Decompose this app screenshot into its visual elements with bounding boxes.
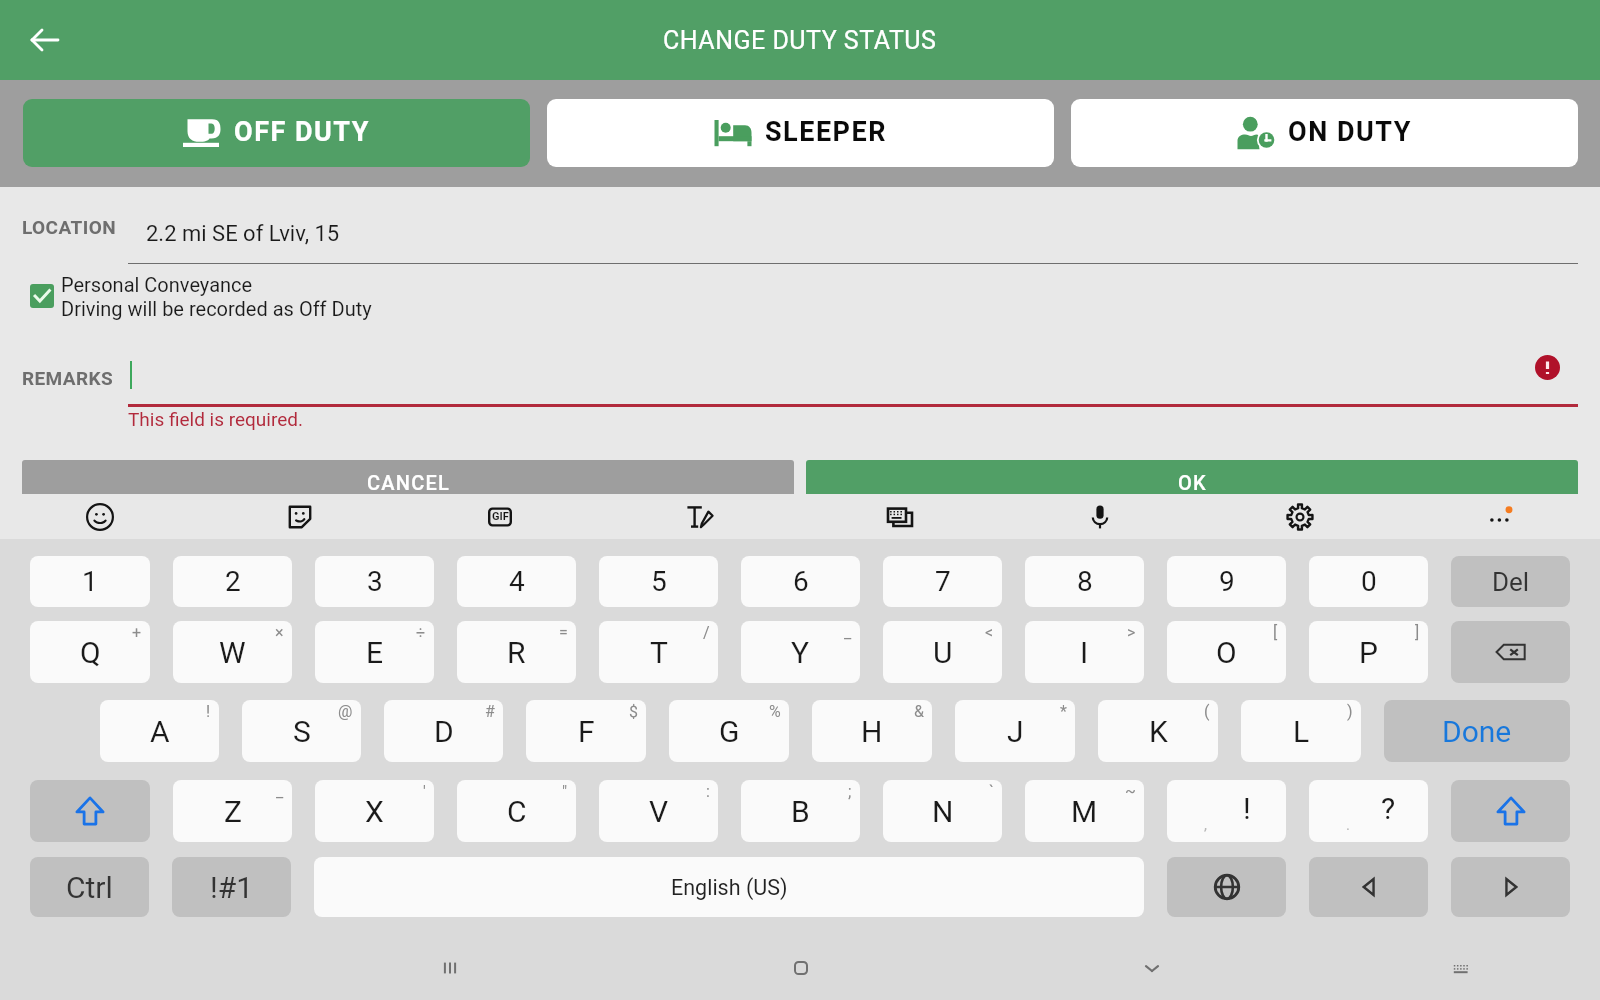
button[interactable]: 1 bbox=[30, 556, 150, 607]
staticText: U bbox=[933, 635, 953, 670]
staticText: GIF bbox=[492, 510, 509, 523]
button[interactable]: Recent apps bbox=[427, 945, 473, 991]
staticText: B bbox=[791, 794, 810, 829]
button[interactable]: G bbox=[669, 700, 789, 762]
staticText: OFF DUTY bbox=[234, 116, 370, 148]
button[interactable]: 7 bbox=[883, 556, 1002, 607]
button[interactable]: J bbox=[955, 700, 1075, 762]
staticText: 3 bbox=[367, 565, 383, 598]
other: Personal Conveyance checked bbox=[30, 284, 54, 308]
button[interactable]: N bbox=[883, 780, 1002, 842]
staticText: P bbox=[1359, 635, 1378, 670]
button[interactable]: backspace bbox=[1451, 621, 1570, 683]
button[interactable]: shift bbox=[1451, 780, 1570, 842]
staticText: ÷ bbox=[416, 623, 426, 642]
button[interactable]: U bbox=[883, 621, 1002, 683]
button[interactable]: Q bbox=[30, 621, 150, 683]
staticText: !#1 bbox=[210, 870, 254, 905]
button[interactable]: OFF DUTY bbox=[23, 99, 530, 167]
button[interactable]: English (US) bbox=[314, 857, 1144, 917]
button[interactable]: E bbox=[315, 621, 434, 683]
staticText: 8 bbox=[1077, 565, 1093, 598]
button[interactable]: 8 bbox=[1025, 556, 1144, 607]
button[interactable]: 0 bbox=[1309, 556, 1428, 607]
staticText: ON DUTY bbox=[1288, 116, 1412, 148]
staticText: J bbox=[1007, 714, 1024, 749]
staticText: _ bbox=[276, 782, 284, 801]
button[interactable]: GIF bbox=[400, 494, 600, 539]
button[interactable]: Ctrl bbox=[30, 857, 149, 917]
staticText: Ctrl bbox=[66, 870, 113, 905]
button[interactable]: H bbox=[812, 700, 932, 762]
button[interactable]: T bbox=[599, 621, 718, 683]
button[interactable]: Switch keyboard bbox=[1438, 945, 1484, 991]
button[interactable]: V bbox=[599, 780, 718, 842]
button[interactable]: More options bbox=[1400, 494, 1600, 539]
staticText: 2.2 mi SE of Lviv, 15 bbox=[146, 221, 340, 247]
button[interactable]: Hide keyboard bbox=[1129, 945, 1175, 991]
button[interactable]: X bbox=[315, 780, 434, 842]
button[interactable]: CANCEL bbox=[22, 460, 794, 504]
staticText: ; bbox=[848, 782, 852, 801]
button[interactable]: Emoji bbox=[0, 494, 200, 539]
staticText: ] bbox=[1415, 623, 1420, 642]
button[interactable]: R bbox=[457, 621, 576, 683]
button[interactable]: ! bbox=[1167, 780, 1286, 842]
button[interactable]: 4 bbox=[457, 556, 576, 607]
button[interactable]: globe bbox=[1167, 857, 1286, 917]
button[interactable]: F bbox=[526, 700, 646, 762]
staticText: Y bbox=[791, 635, 810, 670]
button[interactable]: C bbox=[457, 780, 576, 842]
button[interactable]: M bbox=[1025, 780, 1144, 842]
staticText: E bbox=[366, 635, 384, 670]
button[interactable]: Settings bbox=[1200, 494, 1400, 539]
button[interactable]: I bbox=[1025, 621, 1144, 683]
button[interactable]: S bbox=[242, 700, 361, 762]
button[interactable]: B bbox=[741, 780, 860, 842]
button[interactable]: ? bbox=[1309, 780, 1428, 842]
button[interactable]: Back bbox=[21, 16, 69, 64]
button[interactable]: Home bbox=[778, 945, 824, 991]
button[interactable]: D bbox=[384, 700, 503, 762]
staticText: C bbox=[507, 794, 527, 829]
button[interactable]: A bbox=[100, 700, 219, 762]
button[interactable]: 6 bbox=[741, 556, 860, 607]
button[interactable]: ON DUTY bbox=[1071, 99, 1578, 167]
button[interactable]: right bbox=[1451, 857, 1570, 917]
button[interactable]: O bbox=[1167, 621, 1286, 683]
staticText: / bbox=[703, 623, 710, 642]
staticText: 0 bbox=[1361, 565, 1377, 598]
button[interactable]: L bbox=[1241, 700, 1361, 762]
staticText: @ bbox=[338, 702, 353, 721]
button[interactable]: Z bbox=[173, 780, 292, 842]
button[interactable]: Handwriting bbox=[600, 494, 800, 539]
button[interactable]: 5 bbox=[599, 556, 718, 607]
button[interactable]: shift bbox=[30, 780, 150, 842]
staticText: " bbox=[562, 782, 568, 801]
button[interactable]: OK bbox=[806, 460, 1578, 504]
staticText: S bbox=[293, 714, 311, 749]
button[interactable]: Stickers bbox=[200, 494, 400, 539]
staticText: H bbox=[861, 714, 883, 749]
staticText: O bbox=[1216, 635, 1237, 670]
button[interactable]: W bbox=[173, 621, 292, 683]
button[interactable]: Voice input bbox=[1000, 494, 1200, 539]
staticText: LOCATION bbox=[22, 216, 116, 238]
button[interactable]: left bbox=[1309, 857, 1428, 917]
button[interactable]: 9 bbox=[1167, 556, 1286, 607]
button[interactable]: !#1 bbox=[172, 857, 291, 917]
button[interactable]: K bbox=[1098, 700, 1218, 762]
button[interactable]: SLEEPER bbox=[547, 99, 1054, 167]
button[interactable]: 3 bbox=[315, 556, 434, 607]
button[interactable]: P bbox=[1309, 621, 1428, 683]
staticText: > bbox=[1127, 623, 1136, 642]
button[interactable]: Keyboard mode bbox=[800, 494, 1000, 539]
button[interactable]: Personal Conveyance checked bbox=[22, 272, 382, 320]
staticText: 7 bbox=[935, 565, 951, 598]
staticText: L bbox=[1293, 714, 1310, 749]
button[interactable]: Del bbox=[1451, 556, 1570, 607]
button[interactable]: 2 bbox=[173, 556, 292, 607]
button[interactable]: Done bbox=[1384, 700, 1570, 762]
staticText: . bbox=[1346, 816, 1350, 834]
button[interactable]: Y bbox=[741, 621, 860, 683]
